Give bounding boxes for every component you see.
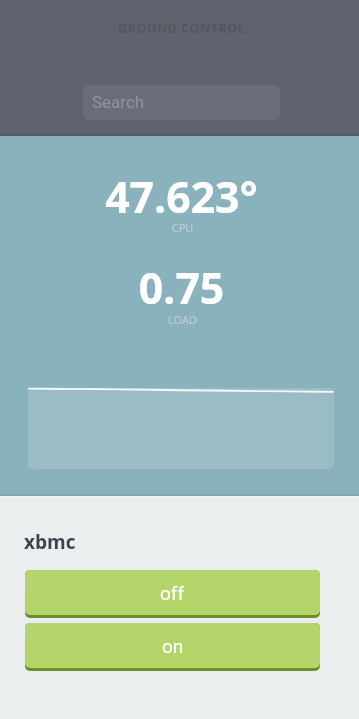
staticText: Search [92,92,145,112]
staticText: LOAD [3,312,359,327]
staticText: CPU [3,220,359,235]
staticText: xbmc [24,529,76,555]
button[interactable] [28,388,334,469]
staticText: 47.623° [2,167,359,225]
button[interactable]: off [25,570,320,618]
staticText: off [160,582,185,604]
button[interactable]: Search [83,85,280,120]
button[interactable]: GROUND CONTROL [118,20,246,37]
staticText: 0.75 [2,258,359,316]
button[interactable]: on [25,623,320,671]
staticText: on [162,635,184,657]
